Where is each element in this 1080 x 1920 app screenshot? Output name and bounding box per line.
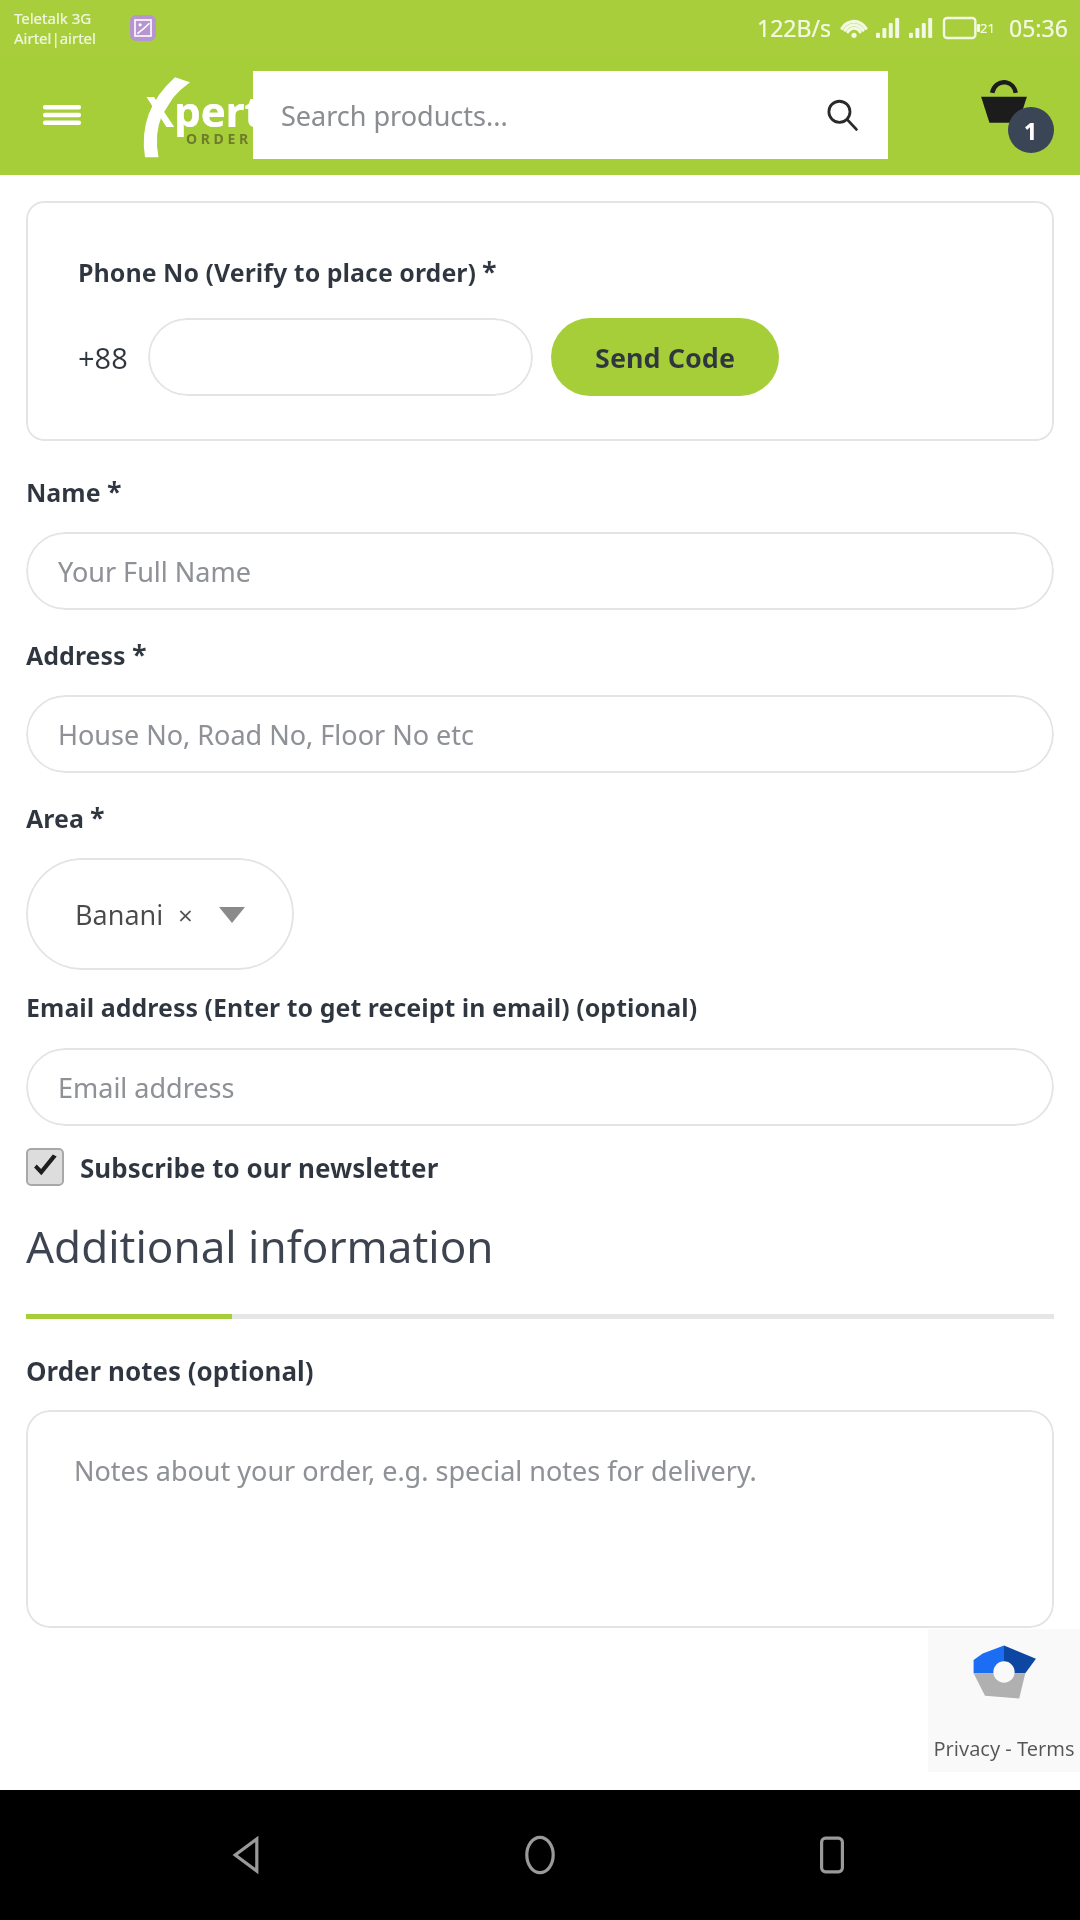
button[interactable]: Notes about your order, e.g. special not… [26,1410,1054,1628]
staticText: Send Code [595,339,736,376]
staticText: Notes about your order, e.g. special not… [74,1452,757,1489]
staticText: 122B/s [757,12,831,43]
button[interactable]: Back [204,1811,292,1899]
button[interactable]: Home [496,1811,584,1899]
staticText: Xpert [146,82,263,139]
button[interactable]: Recents [788,1811,876,1899]
staticText: × [178,897,193,932]
button[interactable]: Privacy - Terms [928,1629,1080,1772]
staticText: * [132,636,147,673]
button[interactable]: Cart [978,77,1054,153]
staticText: * [482,253,497,290]
staticText: 1 [1024,115,1038,146]
button[interactable]: Send Code [551,318,779,396]
staticText: * [90,799,105,836]
button[interactable]: House No, Road No, Floor No etc [26,695,1054,773]
staticText: House No, Road No, Floor No etc [58,716,474,753]
staticText: Name [26,475,101,509]
staticText: Subscribe to our newsletter [80,1150,439,1185]
staticText: O R D E R [186,129,249,148]
staticText: * [107,473,122,510]
staticText: 05:36 [1009,12,1068,43]
other: Search [826,99,858,131]
button[interactable] [148,318,533,396]
staticText: Additional information [26,1216,494,1276]
button[interactable]: Subscribe to our newsletter [26,1148,1054,1186]
button[interactable]: Search products... [253,71,888,159]
staticText: Email address (Enter to get receipt in e… [26,990,698,1024]
staticText: Email address [58,1069,235,1106]
staticText: Banani [75,896,164,933]
staticText: Airtel|airtel [14,28,96,48]
staticText: Order notes (optional) [26,1353,314,1388]
button[interactable]: Your Full Name [26,532,1054,610]
staticText: Teletalk 3G [14,8,92,28]
staticText: Address [26,638,126,672]
staticText: Area [26,801,84,835]
staticText: +88 [78,338,128,377]
staticText: Search products... [281,97,508,134]
button[interactable]: Menu [40,93,84,137]
staticText: Your Full Name [58,553,251,590]
staticText: 21 [980,19,995,37]
button[interactable]: Email address [26,1048,1054,1126]
staticText: Phone No (Verify to place order) [78,255,476,289]
button[interactable]: Banani [26,858,294,970]
staticText: Privacy - Terms [933,1735,1075,1762]
